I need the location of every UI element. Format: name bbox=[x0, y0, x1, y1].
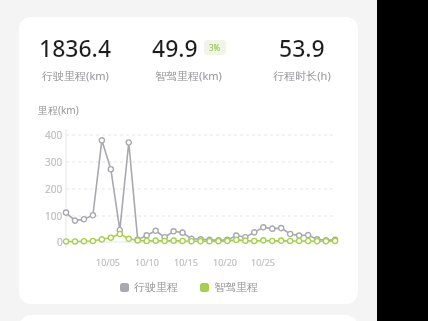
staticText: 10/15 bbox=[174, 256, 198, 268]
staticText: 300 bbox=[45, 155, 63, 169]
staticText: 行程时长(h) bbox=[273, 68, 331, 83]
staticText: 400 bbox=[45, 128, 63, 142]
staticText: 49.9 bbox=[152, 32, 198, 63]
staticText: 10/25 bbox=[251, 256, 275, 268]
staticText: 53.9 bbox=[279, 32, 325, 63]
staticText: 10/05 bbox=[96, 256, 120, 268]
staticText: 0 bbox=[57, 235, 63, 249]
button[interactable]: 53.9 bbox=[245, 32, 358, 83]
staticText: 1836.4 bbox=[39, 32, 112, 63]
button[interactable]: 智驾里程 bbox=[200, 280, 258, 294]
button[interactable]: 1836.4 bbox=[19, 32, 132, 83]
staticText: 200 bbox=[45, 182, 63, 196]
staticText: 里程(km) bbox=[38, 103, 79, 117]
staticText: 智驾里程 bbox=[214, 280, 258, 294]
staticText: 行驶里程(km) bbox=[42, 68, 109, 83]
staticText: 3% bbox=[209, 42, 221, 53]
staticText: 行驶里程 bbox=[134, 280, 178, 294]
button[interactable]: 行驶里程 bbox=[120, 280, 178, 294]
staticText: 10/20 bbox=[213, 256, 237, 268]
button[interactable]: 49.9 bbox=[132, 32, 245, 83]
staticText: 智驾里程(km) bbox=[155, 68, 222, 83]
button[interactable]: 1836.4 bbox=[19, 17, 358, 304]
staticText: 100 bbox=[45, 209, 63, 223]
staticText: 10/10 bbox=[135, 256, 159, 268]
